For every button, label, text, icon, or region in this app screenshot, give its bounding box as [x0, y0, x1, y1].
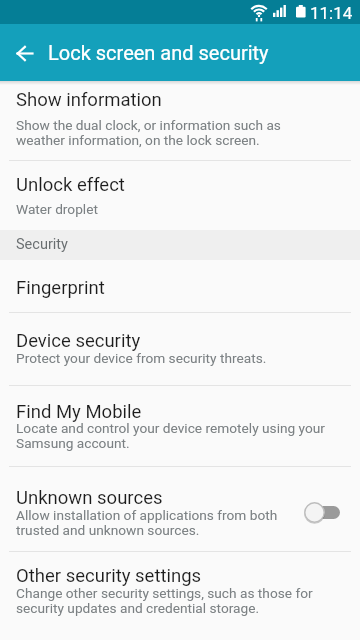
- button[interactable]: [304, 501, 340, 523]
- button[interactable]: Fingerprint: [0, 260, 360, 312]
- button[interactable]: Show information: [0, 82, 360, 160]
- button[interactable]: Unknown sources: [0, 467, 360, 551]
- staticText: Change other security settings, such as …: [16, 585, 313, 616]
- staticText: Security: [16, 236, 68, 253]
- staticText: Device security: [16, 330, 141, 352]
- button[interactable]: Find My Mobile: [0, 386, 360, 466]
- staticText: Locate and control your device remotely …: [16, 420, 325, 451]
- button[interactable]: Unlock effect: [0, 161, 360, 230]
- staticText: Unlock effect: [16, 174, 125, 196]
- staticText: 11:14: [310, 3, 353, 23]
- staticText: Show information: [16, 89, 162, 111]
- button[interactable]: Other security settings: [0, 552, 360, 640]
- button[interactable]: Device security: [0, 313, 360, 385]
- staticText: Show the dual clock, or information such…: [16, 117, 281, 148]
- staticText: Find My Mobile: [16, 401, 142, 423]
- staticText: Allow installation of applications from …: [16, 507, 278, 538]
- button[interactable]: [3, 31, 47, 75]
- staticText: Water droplet: [16, 201, 98, 217]
- staticText: Fingerprint: [16, 277, 105, 299]
- staticText: Protect your device from security threat…: [16, 350, 267, 366]
- staticText: Unknown sources: [16, 487, 163, 509]
- staticText: Other security settings: [16, 565, 202, 587]
- staticText: Lock screen and security: [48, 41, 269, 64]
